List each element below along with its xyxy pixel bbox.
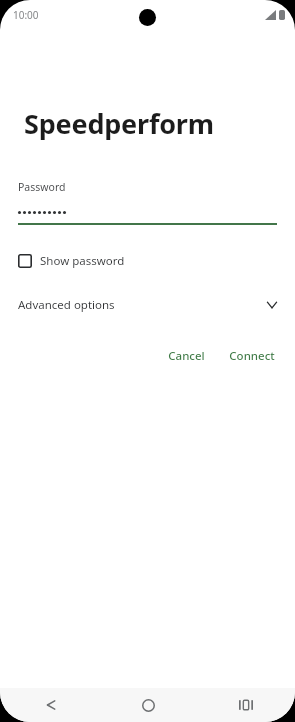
staticText: Connect — [229, 348, 275, 364]
button[interactable] — [18, 207, 277, 225]
button[interactable]: Connect — [223, 343, 281, 369]
staticText: Show password — [40, 253, 125, 269]
button[interactable]: Recent apps — [197, 688, 295, 722]
staticText: 10:00 — [13, 8, 39, 22]
button[interactable]: Show password — [14, 249, 133, 273]
staticText: Advanced options — [18, 297, 115, 313]
staticText: Speedperform — [24, 105, 214, 142]
staticText: Cancel — [168, 348, 205, 364]
button[interactable]: Back — [0, 688, 99, 722]
button[interactable]: Home — [99, 688, 197, 722]
staticText: Password — [18, 180, 66, 194]
button[interactable]: Advanced options — [0, 292, 295, 318]
button[interactable]: Cancel — [162, 343, 211, 369]
